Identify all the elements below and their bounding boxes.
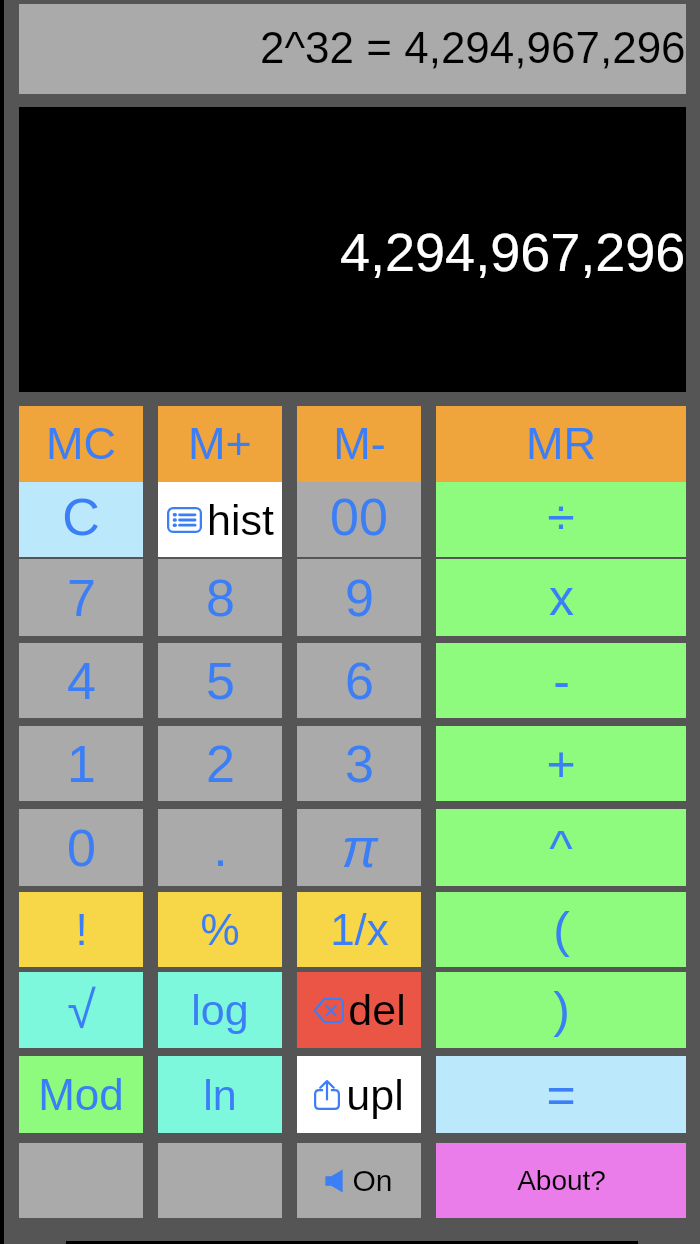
staticText: 4,294,967,296 (340, 222, 686, 282)
button[interactable]: 1/x (297, 892, 421, 967)
button[interactable]: 2^32 = 4,294,967,296 (19, 4, 686, 94)
button[interactable]: 4,294,967,296 (19, 107, 686, 392)
staticText: 1/x (330, 905, 389, 954)
button[interactable]: ln (158, 1056, 282, 1133)
button[interactable]: MC (19, 406, 143, 482)
staticText: 9 (345, 569, 374, 627)
button[interactable]: - (436, 643, 686, 718)
staticText: ) (553, 982, 570, 1038)
button[interactable]: 6 (297, 643, 421, 718)
staticText: - (553, 653, 570, 709)
staticText: M- (333, 418, 386, 468)
staticText: M+ (188, 418, 252, 468)
button[interactable]: M- (297, 406, 421, 482)
button[interactable]: + (436, 726, 686, 801)
staticText: % (200, 905, 240, 954)
staticText: 1 (67, 735, 96, 793)
staticText: + (546, 736, 576, 792)
button[interactable]: π (297, 809, 421, 886)
button[interactable]: 8 (158, 559, 282, 636)
staticText: About? (517, 1165, 606, 1196)
button[interactable]: √ (19, 972, 143, 1048)
staticText: ln (203, 1071, 237, 1119)
staticText: C (62, 488, 100, 546)
button[interactable]: log (158, 972, 282, 1048)
button[interactable]: C (19, 482, 143, 557)
staticText: 7 (67, 569, 96, 627)
button[interactable]: % (158, 892, 282, 967)
button[interactable]: . (158, 809, 282, 886)
button[interactable]: ! (19, 892, 143, 967)
staticText: MR (526, 418, 596, 468)
button[interactable]: Mod (19, 1056, 143, 1133)
staticText: x (549, 570, 574, 626)
button[interactable]: 9 (297, 559, 421, 636)
staticText: log (191, 986, 249, 1034)
button[interactable]: x (436, 559, 686, 636)
staticText: 2 (206, 735, 235, 793)
button[interactable]: 2 (158, 726, 282, 801)
staticText: ^ (549, 820, 573, 876)
button[interactable]: hist (158, 482, 282, 557)
staticText: 8 (206, 569, 235, 627)
staticText: = (546, 1067, 576, 1123)
button[interactable]: ) (436, 972, 686, 1048)
staticText: 00 (330, 488, 388, 546)
button[interactable]: ÷ (436, 482, 686, 557)
staticText: 2^32 = 4,294,967,296 (260, 23, 686, 72)
staticText: √ (67, 981, 96, 1039)
staticText: 5 (206, 652, 235, 710)
staticText: . (213, 819, 228, 877)
button[interactable]: del (297, 972, 421, 1048)
staticText: On (352, 1164, 393, 1198)
button[interactable]: M+ (158, 406, 282, 482)
button[interactable]: = (436, 1056, 686, 1133)
staticText: hist (207, 496, 274, 544)
button[interactable]: On (297, 1143, 421, 1218)
button[interactable]: ^ (436, 809, 686, 886)
button[interactable]: MR (436, 406, 686, 482)
staticText: 0 (67, 819, 96, 877)
staticText: 4 (67, 652, 96, 710)
staticText: Mod (38, 1070, 124, 1119)
button[interactable]: 3 (297, 726, 421, 801)
staticText: 6 (345, 652, 374, 710)
button[interactable]: About? (436, 1143, 686, 1218)
staticText: ! (75, 905, 88, 954)
staticText: del (348, 986, 406, 1034)
staticText: π (341, 818, 378, 878)
staticText: 3 (345, 735, 374, 793)
staticText: MC (46, 418, 116, 468)
button[interactable]: ( (436, 892, 686, 967)
button[interactable]: 5 (158, 643, 282, 718)
button[interactable]: 0 (19, 809, 143, 886)
staticText: ÷ (547, 489, 575, 545)
staticText: upl (346, 1071, 404, 1119)
button[interactable]: 7 (19, 559, 143, 636)
button[interactable]: 00 (297, 482, 421, 557)
button[interactable]: upl (297, 1056, 421, 1133)
button[interactable]: 4 (19, 643, 143, 718)
staticText: ( (553, 902, 570, 958)
button[interactable]: 1 (19, 726, 143, 801)
